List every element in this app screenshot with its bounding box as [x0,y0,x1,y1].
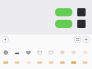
button[interactable]: Sticker [83,50,87,54]
button[interactable]: Sticker [26,50,31,55]
button[interactable]: Sticker [83,61,87,64]
button[interactable]: Sticker [60,61,65,64]
button[interactable]: Sticker [15,61,19,64]
button[interactable]: Sticker [26,61,31,64]
button[interactable]: Memoji sticker [4,50,8,55]
button[interactable]: Sticker [37,61,42,64]
button[interactable]: Sticker [37,50,42,55]
button[interactable]: Sticker [60,50,65,54]
button[interactable]: Sticker [48,50,54,55]
button[interactable]: Sticker [49,61,53,64]
button[interactable]: Apps [75,36,81,43]
button[interactable]: Sticker [15,53,19,54]
button[interactable]: Back [2,36,8,43]
button[interactable]: App Store [83,36,89,43]
button[interactable]: Sticker [71,61,76,64]
button[interactable]: Sticker [3,61,8,64]
button[interactable]: Sticker [71,50,76,54]
